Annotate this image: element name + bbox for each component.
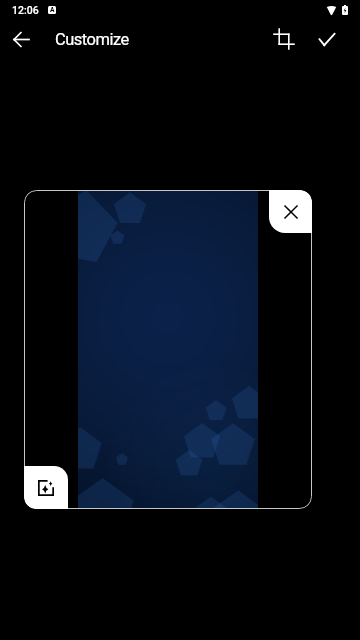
staticText: A: [50, 6, 55, 14]
button[interactable]: Enhance: [24, 466, 68, 509]
button[interactable]: Back: [6, 24, 36, 54]
staticText: 12:06: [12, 4, 39, 16]
button[interactable]: Close: [269, 190, 312, 233]
button[interactable]: Done: [309, 22, 345, 56]
staticText: Customize: [55, 30, 129, 49]
button[interactable]: Crop: [266, 22, 302, 56]
